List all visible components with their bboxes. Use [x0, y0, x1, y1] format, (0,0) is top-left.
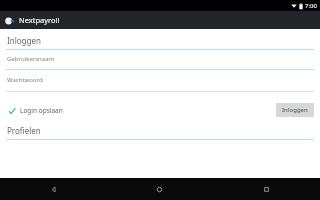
button[interactable]: Login opslaan checkbox — [7, 104, 64, 117]
staticText: Profielen — [7, 125, 41, 136]
button[interactable]: Inloggen — [276, 103, 314, 117]
staticText: Login opslaan — [20, 106, 63, 115]
staticText: 7:00 — [305, 2, 317, 10]
staticText: Gebruikersnaam — [7, 55, 55, 63]
staticText: Wachtwoord — [7, 76, 43, 84]
other: Login opslaan checkbox — [8, 107, 16, 115]
button[interactable]: Back — [0, 178, 106, 200]
button[interactable]: Home — [106, 178, 213, 200]
staticText: Inloggen — [7, 35, 41, 46]
button[interactable]: Nextpayroll app icon — [4, 15, 15, 26]
button[interactable]: Recent apps — [213, 178, 320, 200]
staticText: Nextpayroll — [19, 15, 60, 25]
staticText: Inloggen — [282, 106, 308, 114]
